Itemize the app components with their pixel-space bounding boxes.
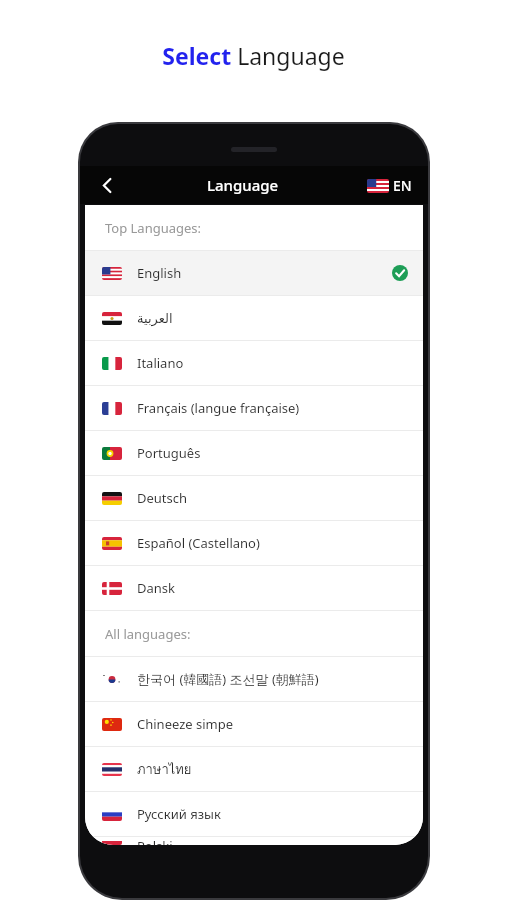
staticText: 한국어 (韓國語) 조선말 (朝鮮語) bbox=[137, 670, 408, 688]
button[interactable]: Dansk bbox=[85, 566, 423, 610]
staticText: Русский язык bbox=[137, 805, 408, 823]
staticText: Dansk bbox=[137, 579, 408, 597]
button[interactable]: Italiano bbox=[85, 341, 423, 385]
staticText: Polski bbox=[137, 837, 408, 845]
staticText: English bbox=[137, 264, 392, 282]
staticText: Português bbox=[137, 444, 408, 462]
staticText: Select Language bbox=[162, 40, 345, 71]
button[interactable]: English bbox=[85, 251, 423, 295]
button[interactable]: Français (langue française) bbox=[85, 386, 423, 430]
staticText: Chineeze simpe bbox=[137, 715, 408, 733]
button[interactable]: العربية bbox=[85, 296, 423, 340]
button[interactable]: Chineeze simpe bbox=[85, 702, 423, 746]
staticText: Language bbox=[207, 175, 279, 195]
button[interactable]: Español (Castellano) bbox=[85, 521, 423, 565]
staticText: Français (langue française) bbox=[137, 399, 408, 417]
button[interactable]: Português bbox=[85, 431, 423, 475]
staticText: All languages: bbox=[105, 625, 191, 643]
button[interactable]: ภาษาไทย bbox=[85, 747, 423, 791]
staticText: ภาษาไทย bbox=[137, 759, 408, 780]
button[interactable]: Русский язык bbox=[85, 792, 423, 836]
staticText: Español (Castellano) bbox=[137, 534, 408, 552]
staticText: EN bbox=[393, 176, 412, 195]
button[interactable]: Deutsch bbox=[85, 476, 423, 520]
button[interactable]: 한국어 (韓國語) 조선말 (朝鮮語) bbox=[85, 657, 423, 701]
staticText: العربية bbox=[137, 311, 408, 326]
staticText: Deutsch bbox=[137, 489, 408, 507]
button[interactable]: Back bbox=[94, 172, 120, 198]
staticText: Italiano bbox=[137, 354, 408, 372]
staticText: Top Languages: bbox=[105, 219, 202, 237]
button[interactable]: Polski bbox=[85, 837, 423, 845]
button[interactable]: EN bbox=[365, 176, 414, 195]
